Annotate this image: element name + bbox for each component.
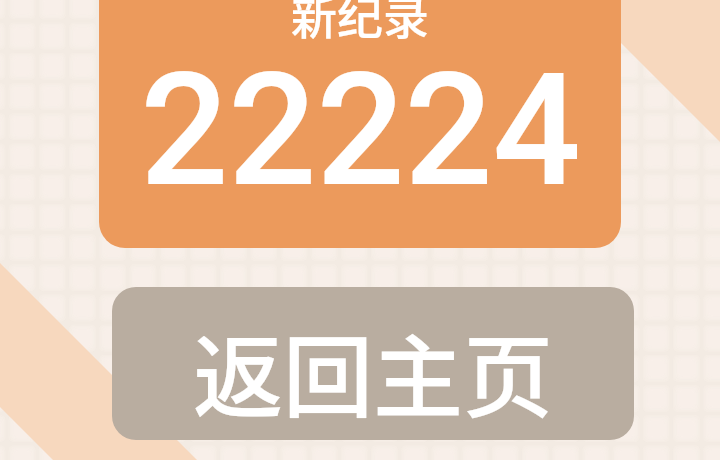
staticText: 新纪录 [291, 0, 429, 48]
staticText: 22224 [140, 40, 581, 222]
button[interactable]: 新纪录 22224 [99, 0, 621, 248]
staticText: 返回主页 [193, 306, 553, 436]
button[interactable]: 返回主页 [112, 287, 634, 440]
